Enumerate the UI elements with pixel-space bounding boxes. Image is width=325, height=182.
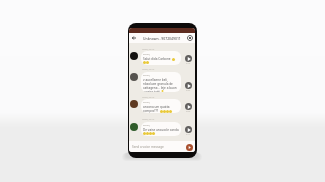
staticText: Rocio J	[143, 74, 151, 77]
staticText: nbsoluee granula de	[143, 82, 173, 86]
staticText: 0:16	[186, 62, 191, 65]
staticText: Today, 09:19	[142, 48, 155, 51]
staticText: Rocio J	[143, 101, 151, 104]
button[interactable]: Play voice message	[185, 55, 192, 62]
button[interactable]: Play voice message	[185, 103, 192, 110]
staticText: ancona um quatta	[143, 105, 170, 109]
staticText: 0:11	[186, 133, 191, 136]
staticText: compra???	[143, 109, 159, 113]
button[interactable]: Rocio J	[141, 72, 181, 92]
button[interactable]: Contact info	[187, 35, 193, 41]
staticText: Today, 09:19	[142, 68, 155, 71]
staticText: Unknown - 9072049011	[143, 36, 181, 41]
staticText: Rocio J	[143, 53, 151, 56]
button[interactable]: Back	[131, 35, 137, 41]
staticText: Today, 09:19	[142, 96, 155, 99]
staticText: 0:08	[186, 110, 191, 113]
staticText: marica tutti	[143, 90, 160, 92]
button[interactable]: Play voice message	[185, 126, 192, 133]
staticText: Today, 09:19	[142, 118, 155, 121]
staticText: Salut dida Carbone	[143, 57, 171, 61]
staticText: De vaise uncuocle canda	[143, 128, 179, 132]
staticText: Send a voice message	[132, 145, 164, 149]
staticText: cattagena .. leje a buon	[143, 86, 177, 90]
button[interactable]: Play voice message	[185, 82, 192, 89]
button[interactable]: Rocio J	[141, 99, 181, 113]
staticText: 0:34	[186, 89, 191, 92]
button[interactable]: Rocio J	[141, 51, 181, 65]
staticText: Rocio J	[143, 124, 151, 127]
staticText: v aucellaene beli,	[143, 78, 168, 82]
button[interactable]: Send voice message	[186, 144, 193, 151]
button[interactable]: Rocio J	[141, 122, 181, 136]
